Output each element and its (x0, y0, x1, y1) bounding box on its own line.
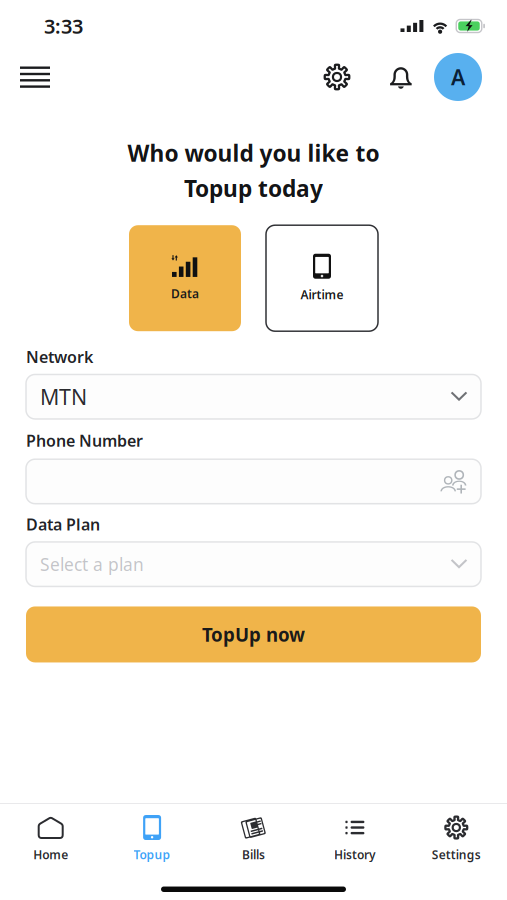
button[interactable]: Notifications (379, 54, 423, 100)
staticText: History (334, 846, 376, 862)
button[interactable]: Data (129, 225, 241, 331)
staticText: MTN (40, 382, 87, 411)
button[interactable]: Settings (406, 804, 507, 862)
button[interactable]: MTN (26, 374, 481, 419)
staticText: Settings (432, 846, 481, 862)
button[interactable]: Select a plan (26, 542, 481, 586)
staticText: Topup today (184, 173, 323, 203)
staticText: Network (26, 346, 93, 367)
button[interactable]: Profile (432, 53, 484, 101)
button[interactable]: Topup (101, 804, 203, 862)
staticText: A (451, 63, 465, 91)
button[interactable]: Settings (315, 54, 359, 100)
button[interactable]: Home (0, 804, 101, 862)
staticText: Who would you like to (127, 138, 379, 168)
staticText: Bills (242, 846, 265, 862)
button[interactable]: Choose from contacts (439, 469, 468, 494)
button[interactable]: TopUp now (26, 606, 481, 662)
staticText: Select a plan (40, 553, 144, 576)
staticText: Airtime (300, 287, 343, 303)
staticText: Topup (134, 846, 171, 862)
button[interactable]: Bills (203, 804, 304, 862)
staticText: Data (171, 286, 199, 302)
button[interactable]: Menu (12, 54, 58, 100)
button[interactable]: Airtime (266, 225, 378, 331)
staticText: Data Plan (26, 514, 100, 535)
staticText: Phone Number (26, 430, 143, 451)
staticText: 3:33 (44, 13, 83, 39)
staticText: Home (33, 846, 68, 862)
staticText: TopUp now (202, 622, 305, 647)
button[interactable]: History (304, 804, 406, 862)
